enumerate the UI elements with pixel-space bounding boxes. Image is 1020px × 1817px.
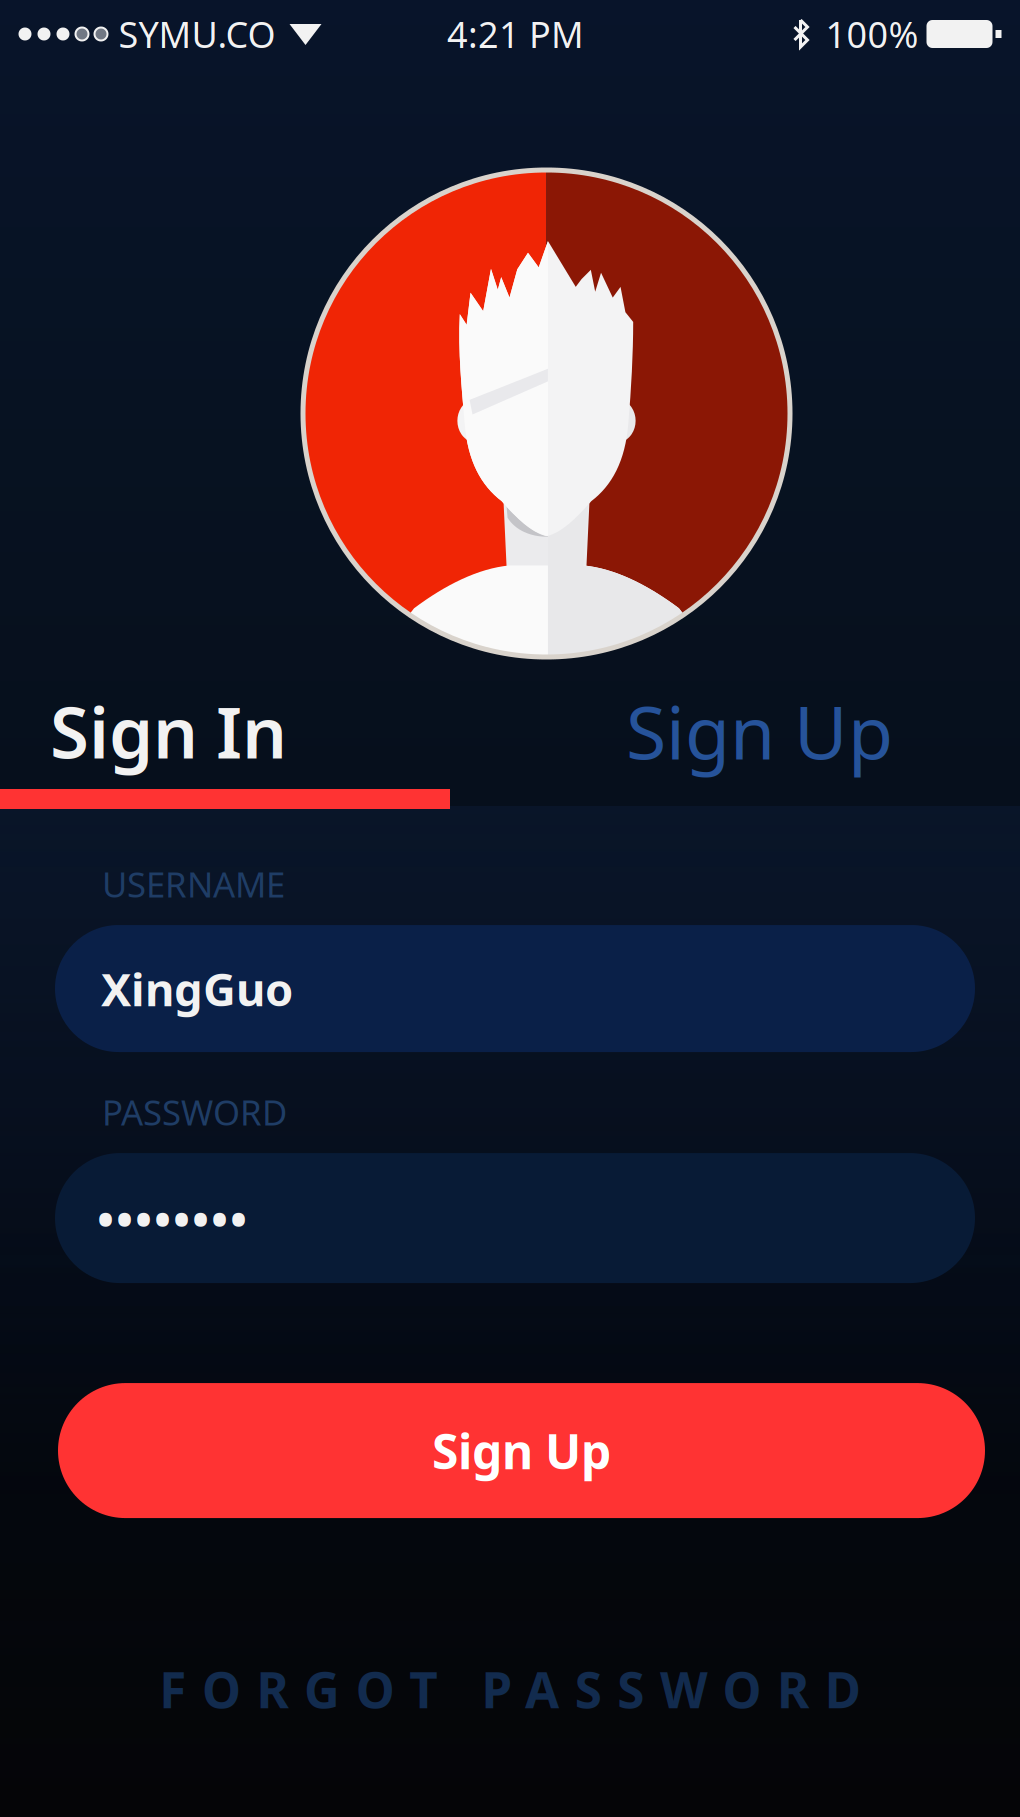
staticText: Sign Up <box>626 682 893 780</box>
staticText: 4:21 PM <box>447 10 584 58</box>
staticText: •••••••• <box>97 1188 247 1248</box>
staticText: Sign In <box>50 684 287 778</box>
staticText: SYMU.CO <box>118 10 275 58</box>
button[interactable]: XingGuo <box>55 925 975 1052</box>
button[interactable]: Password <box>55 1153 975 1283</box>
staticText: 100% <box>825 10 918 58</box>
staticText: USERNAME <box>102 861 285 907</box>
staticText: FORGOT PASSWORD <box>159 1656 861 1722</box>
button[interactable]: Sign Up <box>58 1383 985 1518</box>
button[interactable]: Sign Up <box>446 683 1016 779</box>
button[interactable]: Sign In <box>0 683 446 779</box>
staticText: Sign Up <box>432 1419 611 1482</box>
staticText: PASSWORD <box>102 1089 287 1135</box>
staticText: XingGuo <box>101 958 293 1019</box>
button[interactable]: FORGOT PASSWORD <box>0 1659 1020 1719</box>
